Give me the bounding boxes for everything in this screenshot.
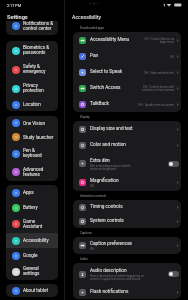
staticText: Game Assistant [23,219,43,230]
button[interactable]: Safety & emergency [6,60,58,79]
button[interactable]: Toggle [168,161,179,167]
button[interactable]: Privacy protection [6,79,58,98]
button[interactable]: TalkBack [73,96,181,112]
staticText: Caption preferences [90,241,133,247]
staticText: Magnification [90,178,119,184]
staticText: Extra dim [90,158,110,164]
staticText: Interaction controls [80,194,106,198]
staticText: Study launcher [23,135,54,140]
button[interactable]: Battery [6,200,58,215]
button[interactable]: Google [6,248,58,263]
staticText: About tablet [23,288,49,293]
staticText: Timing controls [90,204,123,210]
staticText: 2:17 PM [7,3,21,7]
staticText: Display size and text [90,126,133,132]
button[interactable]: Notifications & control center [6,21,58,33]
button[interactable]: Game Assistant [6,215,58,233]
staticText: Flash notifications [90,289,129,295]
button[interactable]: Toggle [168,271,179,277]
staticText: Downloaded apps [80,26,104,30]
button[interactable]: One Vision [6,116,58,130]
staticText: Display [80,115,90,119]
staticText: Hear a description of what's happening o… [90,274,144,280]
button[interactable]: Advanced features [6,163,58,181]
button[interactable]: Display size and text [73,121,181,137]
staticText: System controls [90,218,124,224]
staticText: Audio description [90,268,127,274]
button[interactable]: Pan [73,48,181,64]
staticText: Off / Control device via large menu [134,37,174,43]
staticText: Off / Speak items on screen [134,103,174,106]
staticText: Pen & keyboard [23,148,42,159]
staticText: Location [23,102,41,107]
staticText: Google [23,253,38,258]
button[interactable]: Study launcher [6,130,58,144]
button[interactable]: Flash notifications [73,285,181,299]
button[interactable]: Switch Access [73,80,181,96]
staticText: Accessibility [23,238,49,243]
staticText: Battery [23,205,38,210]
button[interactable]: Apps [6,185,58,200]
staticText: Select to Speak [90,69,123,75]
staticText: Accessibility Menu [90,37,130,43]
staticText: Safety & emergency [23,64,46,75]
staticText: Off [90,247,94,250]
staticText: Notifications & control center [23,21,54,32]
staticText: Advanced features [23,167,44,178]
staticText: Audio [80,257,88,261]
button[interactable]: Accessibility Menu [73,32,181,48]
button[interactable]: Timing controls [73,200,181,214]
button[interactable]: Select to Speak [73,64,181,80]
button[interactable]: Location [6,98,58,111]
button[interactable]: System controls [73,214,181,228]
staticText: Privacy protection [23,83,44,94]
button[interactable]: About tablet [6,284,58,297]
button[interactable]: General settings [6,263,58,280]
staticText: Dim screen beyond your tablet's minimum … [90,164,131,170]
button[interactable]: Audio description [73,263,181,285]
staticText: Color and motion [90,142,126,148]
staticText: Switch Access [90,85,121,91]
staticText: Pan [90,53,99,59]
staticText: Accessibility [72,14,102,20]
staticText: Off [134,55,174,58]
staticText: One Vision [23,121,45,126]
staticText: Off [90,184,94,187]
button[interactable]: Color and motion [73,137,181,153]
button[interactable]: Pen & keyboard [6,144,58,163]
staticText: General settings [23,266,40,277]
button[interactable]: Extra dim [73,153,181,174]
staticText: Apps [23,190,34,195]
staticText: Biometrics & passwords [23,45,50,56]
button[interactable]: Caption preferences [73,237,181,254]
staticText: Off / Hear selected text [134,71,174,74]
staticText: TalkBack [90,101,109,107]
button[interactable]: Magnification [73,174,181,191]
button[interactable]: Biometrics & passwords [6,41,58,60]
button[interactable]: Accessibility [6,233,58,248]
staticText: Off / Control device with switches or fr… [134,85,174,91]
staticText: Settings [7,14,28,21]
staticText: Captions [80,231,92,235]
